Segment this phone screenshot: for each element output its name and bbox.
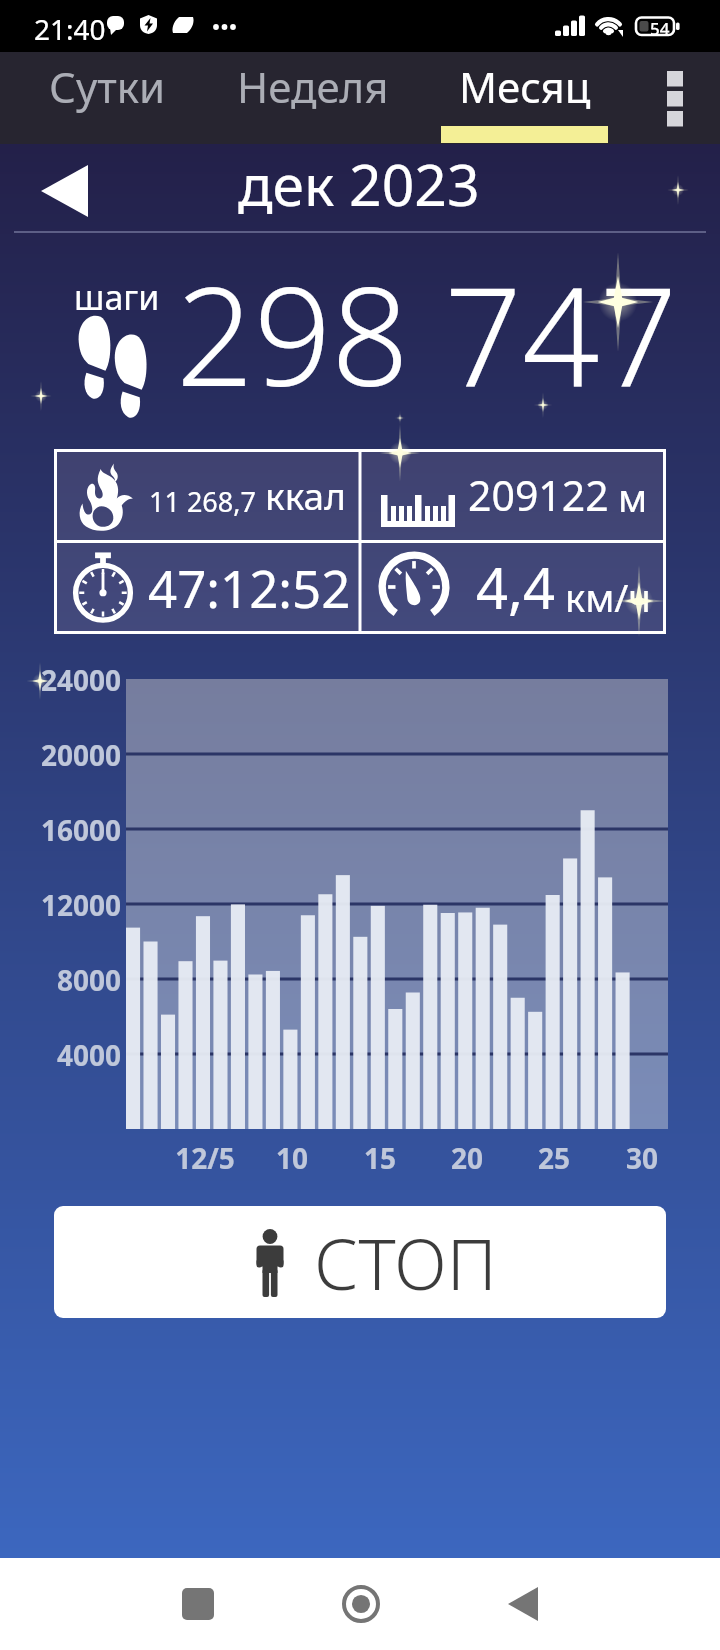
staticText: 30	[582, 1139, 702, 1177]
staticText: ккал	[265, 470, 346, 520]
button[interactable]: 4,4	[360, 541, 666, 633]
staticText: 54	[650, 17, 670, 40]
staticText: СТОП	[314, 1215, 497, 1310]
staticText: 12000	[0, 886, 121, 924]
button[interactable]: 47:12:52	[54, 541, 360, 633]
staticText: 47:12:52	[148, 553, 351, 622]
staticText: 4,4	[476, 549, 556, 625]
button[interactable]: Recents	[120, 1558, 275, 1650]
staticText: дек 2023	[238, 145, 480, 223]
staticText: шаги	[74, 274, 160, 320]
button[interactable]: Сутки	[0, 52, 215, 144]
staticText: 209122	[468, 467, 609, 523]
staticText: Сутки	[49, 58, 166, 115]
button[interactable]: Back	[445, 1558, 600, 1650]
staticText: 12/5	[145, 1139, 265, 1177]
button[interactable]: СТОП	[54, 1206, 666, 1318]
staticText: км/ч	[565, 571, 651, 623]
staticText: 11 268,7	[149, 483, 256, 520]
staticText: 10	[232, 1139, 352, 1177]
staticText: 16000	[0, 811, 121, 849]
button[interactable]: Home	[283, 1558, 438, 1650]
staticText: 4000	[0, 1036, 121, 1074]
staticText: м	[618, 471, 648, 523]
staticText: 15	[320, 1139, 440, 1177]
button[interactable]: 11 268,7	[54, 449, 360, 541]
button[interactable]: Месяц	[441, 52, 608, 144]
staticText: 298 747	[176, 241, 678, 426]
staticText: 25	[494, 1139, 614, 1177]
button[interactable]: Неделя	[200, 52, 426, 144]
button[interactable]: 209122	[360, 449, 666, 541]
button[interactable]: Previous month	[6, 148, 123, 234]
staticText: 8000	[0, 961, 121, 999]
staticText: 21:40	[34, 10, 106, 48]
staticText: Неделя	[237, 58, 389, 115]
staticText: 20	[407, 1139, 527, 1177]
staticText: Месяц	[459, 58, 591, 115]
staticText: 24000	[0, 661, 121, 699]
button[interactable]: More options	[630, 52, 720, 144]
staticText: 20000	[0, 736, 121, 774]
